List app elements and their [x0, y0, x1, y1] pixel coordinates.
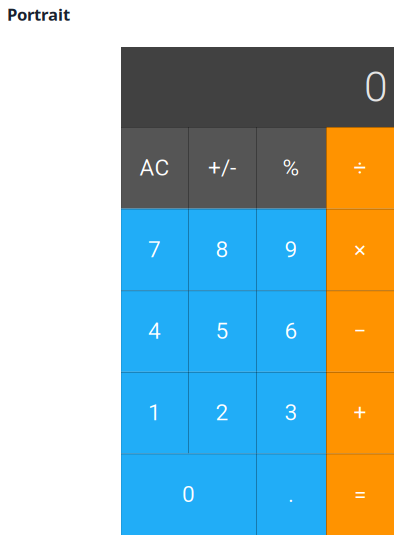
staticText: 1 [148, 399, 161, 426]
staticText: 6 [284, 318, 297, 344]
staticText: 0 [182, 481, 195, 507]
staticText: 8 [215, 236, 228, 263]
staticText: +/- [208, 154, 236, 181]
staticText: 7 [148, 236, 161, 263]
staticText: × [354, 236, 366, 263]
staticText: 0 [364, 62, 388, 112]
button[interactable]: % [256, 127, 326, 209]
staticText: − [353, 318, 366, 344]
staticText: 2 [215, 399, 228, 426]
staticText: + [353, 399, 366, 426]
button[interactable]: 8 [188, 209, 256, 290]
staticText: 4 [148, 318, 161, 344]
staticText: AC [139, 154, 169, 181]
button[interactable]: − [326, 290, 394, 372]
staticText: . [288, 481, 294, 507]
staticText: 9 [284, 236, 297, 263]
button[interactable]: ÷ [326, 127, 394, 209]
button[interactable]: 0 [121, 453, 256, 535]
staticText: = [354, 481, 366, 507]
button[interactable]: 6 [256, 290, 326, 372]
button[interactable]: = [326, 453, 394, 535]
button[interactable]: 1 [121, 372, 188, 453]
button[interactable]: 4 [121, 290, 188, 372]
staticText: 5 [215, 318, 228, 344]
staticText: % [282, 154, 299, 181]
staticText: ÷ [353, 154, 366, 181]
button[interactable]: + [326, 372, 394, 453]
button[interactable]: 3 [256, 372, 326, 453]
staticText: 3 [284, 399, 297, 426]
button[interactable]: 9 [256, 209, 326, 290]
staticText: Portrait [7, 3, 70, 26]
button[interactable]: 2 [188, 372, 256, 453]
button[interactable]: × [326, 209, 394, 290]
button[interactable]: 7 [121, 209, 188, 290]
button[interactable]: AC [121, 127, 188, 209]
button[interactable]: 5 [188, 290, 256, 372]
button[interactable]: +/- [188, 127, 256, 209]
button[interactable]: . [256, 453, 326, 535]
